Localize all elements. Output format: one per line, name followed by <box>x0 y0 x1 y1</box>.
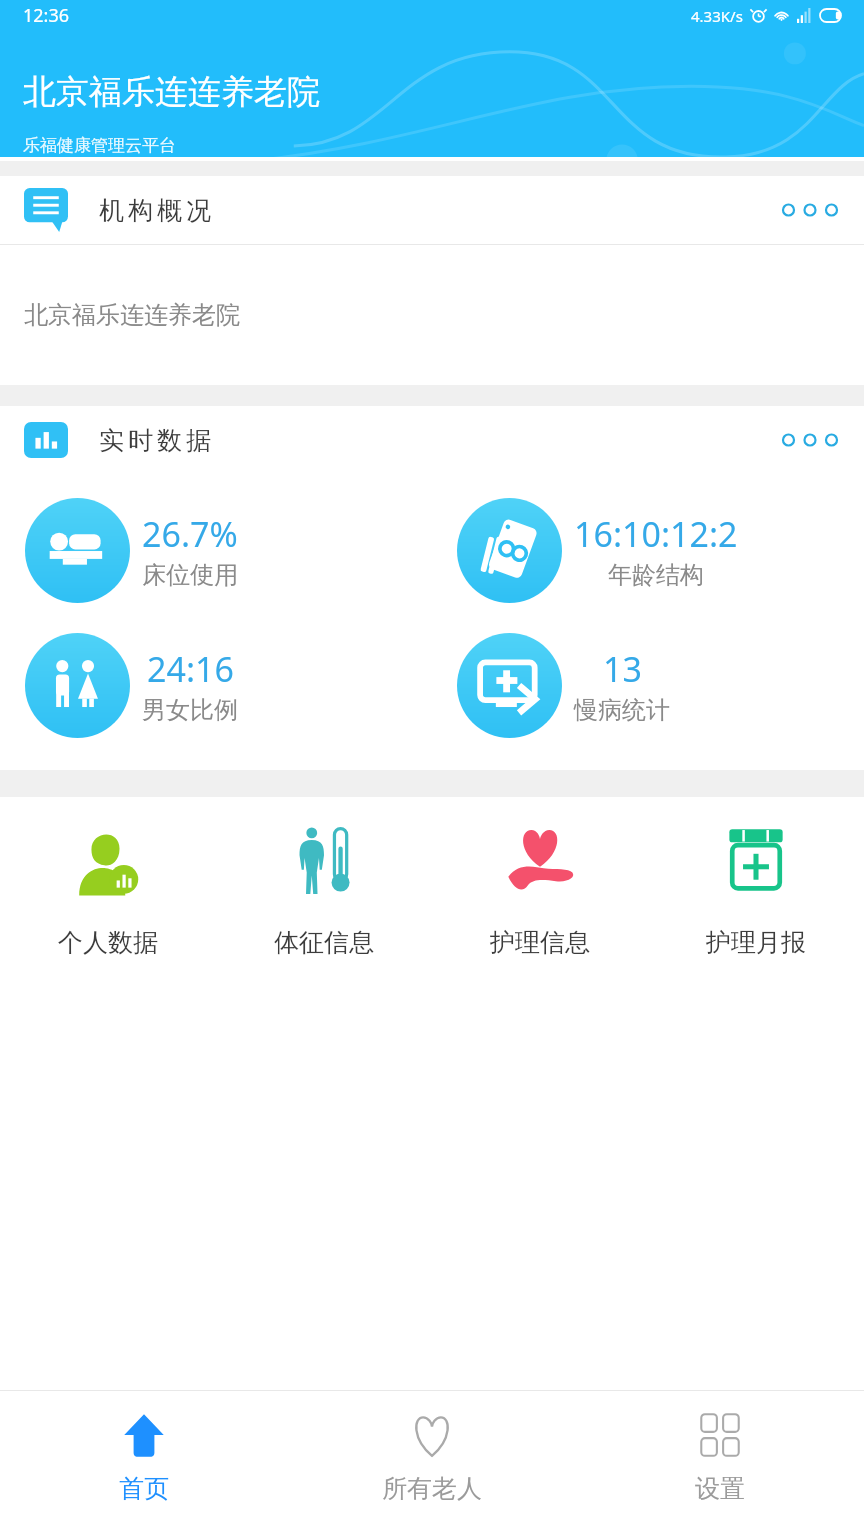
button[interactable]: 护理月报 <box>648 825 864 958</box>
staticText: 26.7% <box>142 511 238 557</box>
staticText: 护理信息 <box>490 927 590 958</box>
staticText: 机构概况 <box>97 195 213 226</box>
staticText: 实时数据 <box>97 425 213 456</box>
staticText: 护理月报 <box>706 927 806 958</box>
button[interactable]: 设置 <box>576 1391 864 1536</box>
staticText: 乐福健康管理云平台 <box>23 135 176 156</box>
button[interactable]: 机构概况 <box>0 176 864 244</box>
staticText: 所有老人 <box>382 1473 482 1504</box>
button[interactable]: 所有老人 <box>288 1391 576 1536</box>
staticText: 4.33K/s <box>691 6 743 26</box>
button[interactable]: 护理信息 <box>432 825 648 958</box>
staticText: 16:10:12:2 <box>574 511 738 557</box>
staticText: 12:36 <box>23 3 70 28</box>
staticText: 男女比例 <box>142 695 238 725</box>
button[interactable]: 北京福乐连连养老院 <box>0 245 864 385</box>
staticText: 慢病统计 <box>574 695 670 725</box>
button[interactable]: 13 <box>432 633 864 738</box>
staticText: 年龄结构 <box>608 560 704 590</box>
button[interactable]: 26.7% <box>0 498 432 603</box>
button[interactable]: 个人数据 <box>0 825 216 958</box>
button[interactable]: 16:10:12:2 <box>432 498 864 603</box>
button[interactable]: 实时数据 <box>0 406 864 474</box>
staticText: 设置 <box>695 1473 745 1504</box>
staticText: 24:16 <box>147 646 234 692</box>
staticText: 床位使用 <box>142 560 238 590</box>
staticText: 北京福乐连连养老院 <box>23 71 320 113</box>
staticText: 体征信息 <box>274 927 374 958</box>
button[interactable]: 体征信息 <box>216 825 432 958</box>
staticText: 北京福乐连连养老院 <box>24 300 240 330</box>
button[interactable]: More options <box>780 420 840 460</box>
staticText: 首页 <box>119 1473 169 1504</box>
button[interactable]: 首页 <box>0 1391 288 1536</box>
staticText: 13 <box>603 646 642 692</box>
button[interactable]: 24:16 <box>0 633 432 738</box>
staticText: 个人数据 <box>58 927 158 958</box>
button[interactable]: More options <box>780 190 840 230</box>
